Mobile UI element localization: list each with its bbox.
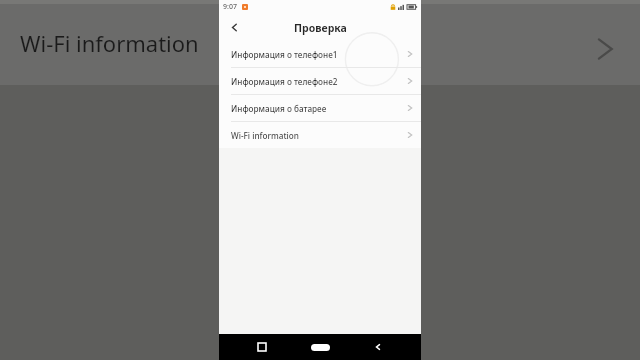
staticText: Информация о батарее xyxy=(231,103,407,114)
button[interactable]: Информация о батарее xyxy=(219,95,421,121)
staticText: Wi-Fi information xyxy=(231,130,407,141)
button[interactable]: Back xyxy=(219,14,249,41)
button[interactable]: Back xyxy=(349,334,407,360)
staticText: Информация о телефоне2 xyxy=(231,76,407,87)
staticText: Информация о телефоне1 xyxy=(231,49,407,60)
button[interactable]: Wi-Fi information xyxy=(219,122,421,148)
button[interactable]: Recent apps xyxy=(233,334,291,360)
staticText: Wi-Fi information xyxy=(20,28,199,58)
button[interactable]: Next xyxy=(578,22,632,76)
button[interactable]: Home xyxy=(291,334,349,360)
staticText: 9:07 xyxy=(223,2,237,12)
button[interactable]: Информация о телефоне2 xyxy=(219,68,421,94)
staticText: Проверка xyxy=(294,21,347,35)
button[interactable]: Информация о телефоне1 xyxy=(219,41,421,67)
